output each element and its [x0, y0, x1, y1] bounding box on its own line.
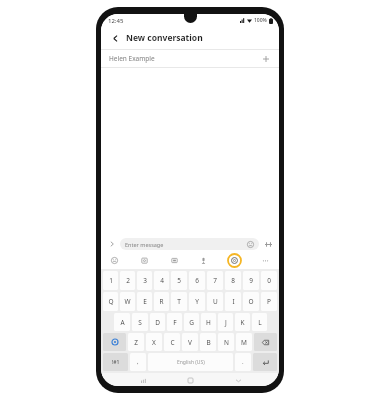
button[interactable]: 5	[171, 271, 187, 290]
button[interactable]: R	[154, 292, 169, 311]
button[interactable]: Q	[103, 292, 118, 311]
staticText: S	[138, 318, 142, 327]
button[interactable]: J	[218, 313, 233, 331]
button[interactable]: D	[150, 313, 165, 331]
staticText: T	[177, 297, 181, 306]
staticText: I	[232, 297, 235, 306]
button[interactable]: 9	[243, 271, 259, 290]
staticText: B	[206, 338, 211, 347]
staticText: Helen Example	[109, 54, 155, 63]
button[interactable]: 1	[103, 271, 118, 290]
button[interactable]: Symbols	[103, 353, 128, 371]
button[interactable]: S	[132, 313, 148, 331]
button[interactable]: B	[200, 333, 216, 351]
button[interactable]: C	[164, 333, 180, 351]
staticText: 1	[109, 276, 113, 285]
button[interactable]: Period	[235, 353, 251, 371]
staticText: 2	[126, 276, 130, 285]
button[interactable]: T	[171, 292, 187, 311]
staticText: English (US)	[177, 359, 205, 366]
staticText: .	[242, 358, 244, 366]
staticText: J	[225, 318, 227, 327]
button[interactable]: O	[243, 292, 259, 311]
staticText: D	[155, 318, 160, 327]
button[interactable]: A	[114, 313, 130, 331]
staticText: 12:45	[108, 17, 124, 25]
button[interactable]: W	[120, 292, 135, 311]
staticText: G	[189, 318, 194, 327]
staticText: U	[213, 297, 218, 306]
staticText: H	[206, 318, 211, 327]
button[interactable]: V	[182, 333, 198, 351]
button[interactable]: F	[167, 313, 182, 331]
button[interactable]: 2	[120, 271, 135, 290]
button[interactable]: Backspace	[254, 333, 277, 351]
button[interactable]: I	[225, 292, 241, 311]
button[interactable]: Back	[232, 374, 244, 386]
staticText: O	[248, 297, 254, 306]
staticText: 9	[249, 276, 253, 285]
button[interactable]: Images	[168, 254, 181, 267]
button[interactable]: 6	[189, 271, 205, 290]
staticText: V	[188, 338, 192, 347]
button[interactable]: Shift	[103, 333, 126, 351]
staticText: 8	[231, 276, 235, 285]
button[interactable]: 0	[261, 271, 277, 290]
staticText: W	[124, 297, 131, 306]
staticText: X	[152, 338, 156, 347]
button[interactable]: Settings	[227, 253, 242, 268]
staticText: 100%	[254, 17, 267, 24]
button[interactable]: Enter message	[120, 238, 259, 250]
button[interactable]: Helen Example	[101, 50, 279, 67]
button[interactable]: K	[235, 313, 250, 331]
button[interactable]: Home	[184, 374, 196, 386]
staticText: A	[120, 318, 125, 327]
button[interactable]: Expand	[106, 238, 117, 249]
staticText: 4	[160, 276, 164, 285]
staticText: K	[240, 318, 245, 327]
button[interactable]: P	[261, 292, 277, 311]
staticText: !#1	[112, 359, 120, 366]
button[interactable]: Space	[148, 353, 233, 371]
button[interactable]: Add recipient	[260, 53, 271, 64]
button[interactable]: 3	[137, 271, 152, 290]
button[interactable]: Comma	[130, 353, 146, 371]
button[interactable]: More	[259, 254, 272, 267]
button[interactable]: U	[207, 292, 223, 311]
staticText: Q	[108, 297, 114, 306]
staticText: 7	[213, 276, 217, 285]
button[interactable]: X	[146, 333, 162, 351]
button[interactable]: Voice	[197, 254, 210, 267]
staticText: P	[267, 297, 271, 306]
staticText: Y	[195, 297, 199, 306]
button[interactable]: Stickers	[108, 254, 121, 267]
button[interactable]: 7	[207, 271, 223, 290]
button[interactable]: N	[218, 333, 234, 351]
staticText: F	[173, 318, 177, 327]
staticText: New conversation	[126, 32, 203, 44]
staticText: L	[258, 318, 262, 327]
button[interactable]: 4	[154, 271, 169, 290]
staticText: Enter message	[125, 241, 164, 248]
staticText: Z	[134, 338, 138, 347]
button[interactable]: Y	[189, 292, 205, 311]
button[interactable]: E	[137, 292, 152, 311]
staticText: ,	[137, 358, 139, 366]
staticText: M	[241, 338, 247, 347]
button[interactable]: H	[201, 313, 216, 331]
staticText: E	[143, 297, 147, 306]
staticText: 3	[143, 276, 147, 285]
button[interactable]: Recents	[137, 374, 149, 386]
button[interactable]: Gallery	[138, 254, 151, 267]
button[interactable]: Enter	[253, 353, 277, 371]
button[interactable]: G	[184, 313, 199, 331]
button[interactable]: M	[236, 333, 252, 351]
button[interactable]: 8	[225, 271, 241, 290]
staticText: C	[170, 338, 175, 347]
button[interactable]: Z	[128, 333, 144, 351]
button[interactable]: L	[252, 313, 267, 331]
staticText: 0	[267, 276, 271, 285]
staticText: N	[224, 338, 229, 347]
button[interactable]: Back	[108, 31, 122, 45]
button[interactable]: Send	[262, 238, 274, 250]
